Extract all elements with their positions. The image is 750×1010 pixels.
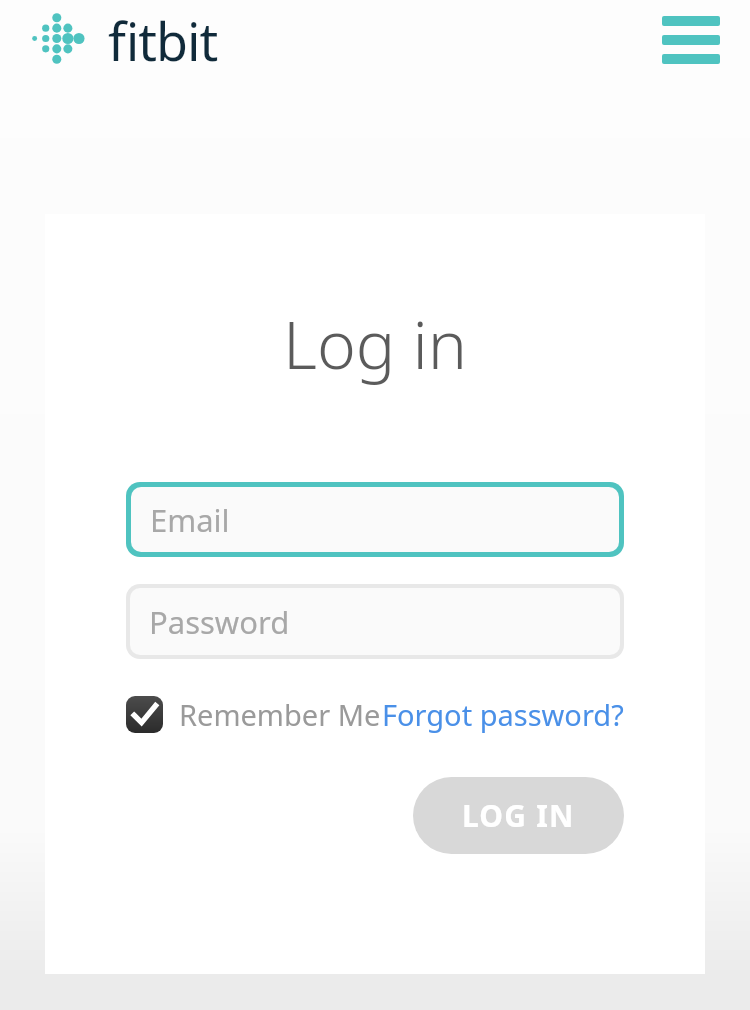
staticText: Remember Me [179,695,381,734]
button[interactable]: Forgot password? [382,695,624,734]
staticText: Forgot password? [382,695,624,734]
staticText: Email [150,499,230,541]
button[interactable]: LOG IN [413,777,624,854]
staticText: Password [149,601,290,643]
button[interactable]: Menu [662,15,720,65]
staticText: fitbit [108,5,218,76]
button[interactable]: Fitbit home [30,5,218,76]
button[interactable]: Email [131,487,619,552]
button[interactable]: Remember Me [126,695,381,734]
button[interactable]: Password [130,588,620,655]
staticText: Log in [45,298,705,388]
staticText: LOG IN [462,795,575,836]
